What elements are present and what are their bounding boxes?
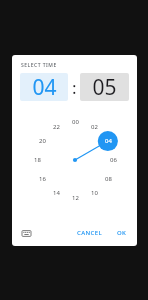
button[interactable]: 00 [67, 114, 83, 130]
button[interactable]: 02 [86, 119, 102, 135]
staticText: 00 [72, 118, 79, 126]
staticText: 14 [53, 189, 60, 197]
button[interactable]: OK [114, 227, 130, 239]
button[interactable]: 10 [86, 185, 102, 201]
staticText: 10 [91, 189, 98, 197]
button[interactable]: 04 [100, 133, 116, 149]
staticText: : [72, 76, 77, 99]
staticText: 22 [53, 123, 60, 131]
button[interactable]: 05 [80, 73, 129, 101]
button[interactable]: 22 [48, 119, 64, 135]
button[interactable]: 18 [29, 152, 45, 168]
staticText: 12 [72, 194, 79, 202]
button[interactable]: 16 [34, 171, 50, 187]
button[interactable]: 04 [20, 73, 68, 101]
staticText: CANCEL [77, 229, 103, 237]
staticText: SELECT TIME [21, 62, 57, 69]
staticText: 02 [91, 123, 98, 131]
button[interactable]: 20 [34, 133, 50, 149]
button[interactable]: 14 [48, 185, 64, 201]
button[interactable]: 08 [100, 171, 116, 187]
staticText: OK [117, 229, 127, 237]
staticText: 20 [39, 137, 46, 145]
staticText: 06 [110, 156, 117, 164]
staticText: 04 [32, 73, 57, 101]
button[interactable]: CANCEL [74, 227, 106, 239]
staticText: 04 [105, 137, 112, 145]
staticText: 16 [39, 175, 46, 183]
staticText: 05 [92, 73, 117, 101]
button[interactable]: Switch to text input [18, 225, 34, 241]
button[interactable]: 12 [67, 190, 83, 206]
button[interactable]: 06 [105, 152, 121, 168]
staticText: 08 [105, 175, 112, 183]
staticText: 18 [34, 156, 41, 164]
